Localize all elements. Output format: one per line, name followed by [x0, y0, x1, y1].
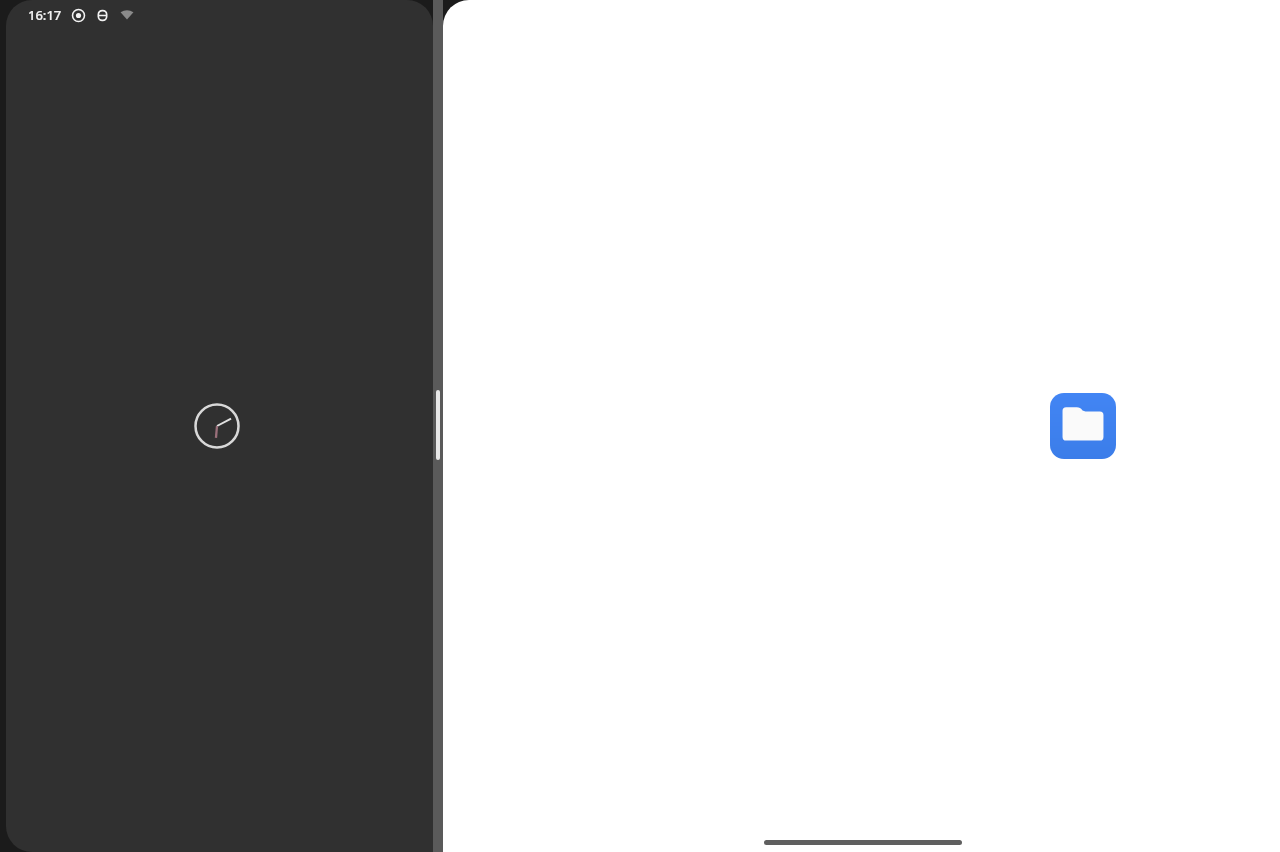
button[interactable]: Resize split screen: [433, 0, 443, 852]
button[interactable]: Clock: [194, 403, 240, 449]
button[interactable]: Files: [1050, 393, 1116, 459]
staticText: 16:17: [28, 6, 62, 24]
